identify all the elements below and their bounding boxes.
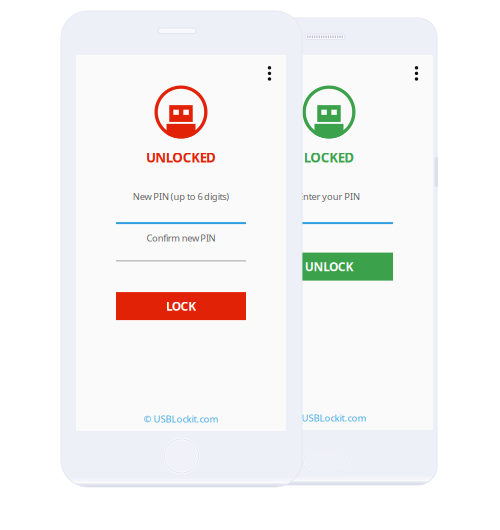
button[interactable]: © USBLockit.com <box>291 412 366 424</box>
button[interactable]: UNLOCK <box>265 253 393 281</box>
button[interactable]: © USBLockit.com <box>143 413 218 425</box>
staticText: UNLOCKED <box>146 148 216 166</box>
button[interactable]: More options <box>259 57 280 90</box>
button[interactable]: LOCK <box>116 292 246 320</box>
staticText: UNLOCK <box>305 259 353 274</box>
staticText: © USBLockit.com <box>291 412 366 424</box>
button[interactable]: More options <box>406 57 427 90</box>
staticText: Enter your PIN <box>298 190 360 203</box>
staticText: Confirm new PIN <box>146 232 216 244</box>
staticText: LOCKED <box>304 148 354 166</box>
staticText: © USBLockit.com <box>143 413 218 425</box>
staticText: New PIN (up to 6 digits) <box>133 190 229 203</box>
staticText: LOCK <box>166 298 196 314</box>
